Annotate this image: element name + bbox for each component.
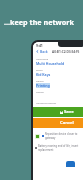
staticText: Room [36,68,43,71]
staticText: Device [36,79,44,82]
staticText: Owner [36,90,44,93]
staticText: Hostname [36,57,49,60]
staticText: Back [40,49,48,54]
button[interactable]: Reposition device closer to [33,130,83,142]
staticText: Save [64,109,74,115]
button[interactable]: Save [33,107,83,117]
staticText: Cancel [60,120,74,126]
staticText: Battery nearing end of life, insert [38,144,79,148]
button[interactable]: Device [33,78,83,89]
staticText: 9:41 [36,43,43,48]
staticText: Advanced Details [36,101,57,104]
button[interactable]: Cancel [33,118,83,128]
button[interactable]: Hostname [33,56,83,67]
button[interactable]: Room [33,67,83,78]
staticText: A0:B1:C2:D3:E4:F5 [52,50,80,54]
button[interactable]: Device [66,161,75,167]
staticText: gateway [45,136,56,140]
staticText: Printing [36,83,50,88]
button[interactable]: Battery nearing end of life, insert [33,142,83,154]
button[interactable]: Owner [33,89,83,100]
staticText: Reposition device closer to [45,132,78,136]
staticText: Multi Household [36,61,65,66]
button[interactable]: Back [35,48,49,55]
staticText: Kid Kays [36,72,51,77]
staticText: replacement [38,148,54,152]
staticText: ...keep the network healthy, [4,17,83,27]
